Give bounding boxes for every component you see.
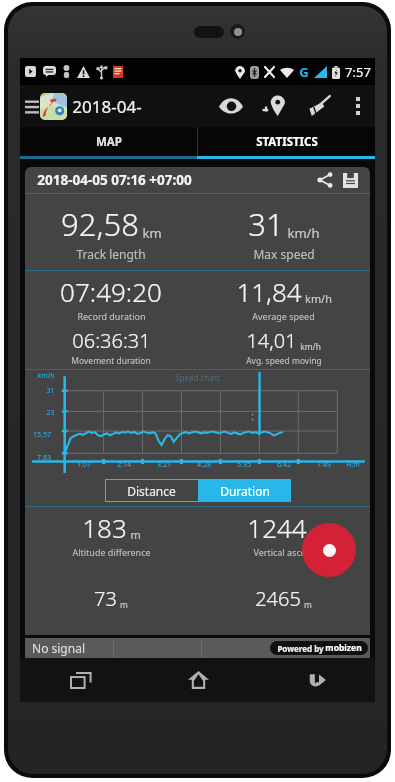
staticText: Track length	[76, 246, 146, 262]
staticText: Average speed	[252, 310, 315, 322]
staticText: 15,57	[33, 430, 51, 440]
staticText: 06:36:31	[72, 327, 151, 354]
staticText: mobizen	[325, 642, 362, 654]
staticText: 7:49	[317, 460, 331, 470]
button[interactable]: Recents	[20, 658, 139, 702]
staticText: km	[142, 224, 162, 242]
button[interactable]: Clear track	[297, 85, 341, 127]
button[interactable]: Home	[139, 658, 257, 702]
staticText: 1244	[247, 510, 307, 545]
staticText: 23	[46, 408, 55, 418]
staticText: 11,84	[236, 274, 302, 309]
staticText: 2018-04-05 07:16 +07:00	[37, 171, 192, 189]
button[interactable]: Distance	[105, 479, 198, 502]
staticText: 7:57	[345, 63, 371, 81]
staticText: m	[310, 527, 321, 542]
staticText: 2018-04-	[72, 95, 142, 118]
staticText: km/h	[300, 341, 321, 352]
staticText: 4:28	[197, 460, 211, 470]
staticText: Record duration	[77, 310, 146, 322]
button[interactable]: Open navigation drawer	[20, 85, 72, 127]
staticText: m	[120, 599, 128, 610]
staticText: Max speed	[253, 246, 315, 262]
staticText: Vertical ascent	[253, 546, 315, 558]
staticText: 183	[82, 510, 127, 545]
staticText: 31	[248, 203, 284, 245]
staticText: 3:21	[157, 460, 171, 470]
button[interactable]: More options	[341, 85, 375, 127]
button[interactable]: Add waypoint	[253, 85, 297, 127]
staticText: Movement duration	[71, 355, 151, 367]
button[interactable]: Save	[340, 170, 360, 190]
button[interactable]: Back	[257, 658, 375, 702]
staticText: m	[304, 599, 312, 610]
button[interactable]: MAP	[20, 127, 197, 156]
button[interactable]: STATISTICS	[198, 127, 375, 156]
staticText: H:m	[346, 460, 360, 470]
staticText: km/h	[37, 371, 55, 381]
staticText: G	[299, 63, 309, 81]
staticText: km/h	[305, 291, 332, 306]
staticText: 73	[94, 585, 117, 612]
button[interactable]: Duration	[198, 479, 291, 502]
staticText: 92,58	[61, 203, 139, 245]
staticText: 6:42	[277, 460, 291, 470]
staticText: 2:14	[117, 460, 131, 470]
staticText: Avg. speed moving	[246, 355, 322, 367]
staticText: 7,83	[37, 453, 51, 463]
staticText: 31	[46, 386, 55, 396]
staticText: km/h	[287, 224, 320, 242]
staticText: MAP	[96, 134, 122, 150]
staticText: Duration	[220, 483, 270, 499]
button[interactable]: Record	[302, 523, 356, 577]
staticText: 14,01	[246, 327, 297, 354]
staticText: Speed chart	[175, 372, 220, 383]
button[interactable]: Share	[314, 169, 336, 191]
staticText: 2465	[255, 585, 301, 612]
staticText: 5:35	[237, 460, 251, 470]
staticText: Altitude difference	[72, 546, 151, 558]
staticText: Powered by	[276, 643, 325, 654]
staticText: Distance	[127, 483, 176, 499]
staticText: m	[130, 527, 141, 542]
staticText: STATISTICS	[256, 134, 318, 150]
staticText: 07:49:20	[60, 274, 162, 309]
staticText: 1:07	[77, 460, 91, 470]
staticText: No signal	[32, 640, 85, 656]
button[interactable]: Visibility	[209, 85, 253, 127]
